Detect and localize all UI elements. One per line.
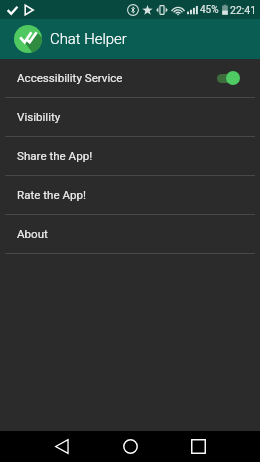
staticText: 45% [200, 4, 219, 16]
button[interactable]: Home [115, 431, 145, 462]
staticText: About [17, 227, 48, 241]
button[interactable]: Visibility [0, 98, 260, 136]
button[interactable]: Accessibility Service [0, 59, 260, 97]
staticText: Rate the App! [17, 188, 87, 202]
button[interactable]: About [0, 215, 260, 253]
staticText: Visibility [17, 110, 61, 124]
button[interactable]: Rate the App! [0, 176, 260, 214]
staticText: Chat Helper [50, 30, 127, 47]
button[interactable]: Share the App! [0, 137, 260, 175]
staticText: Share the App! [17, 149, 93, 163]
button[interactable]: Back [47, 431, 77, 462]
button[interactable]: Recents [183, 431, 213, 462]
staticText: Accessibility Service [17, 71, 123, 85]
staticText: 22:41 [230, 4, 257, 16]
